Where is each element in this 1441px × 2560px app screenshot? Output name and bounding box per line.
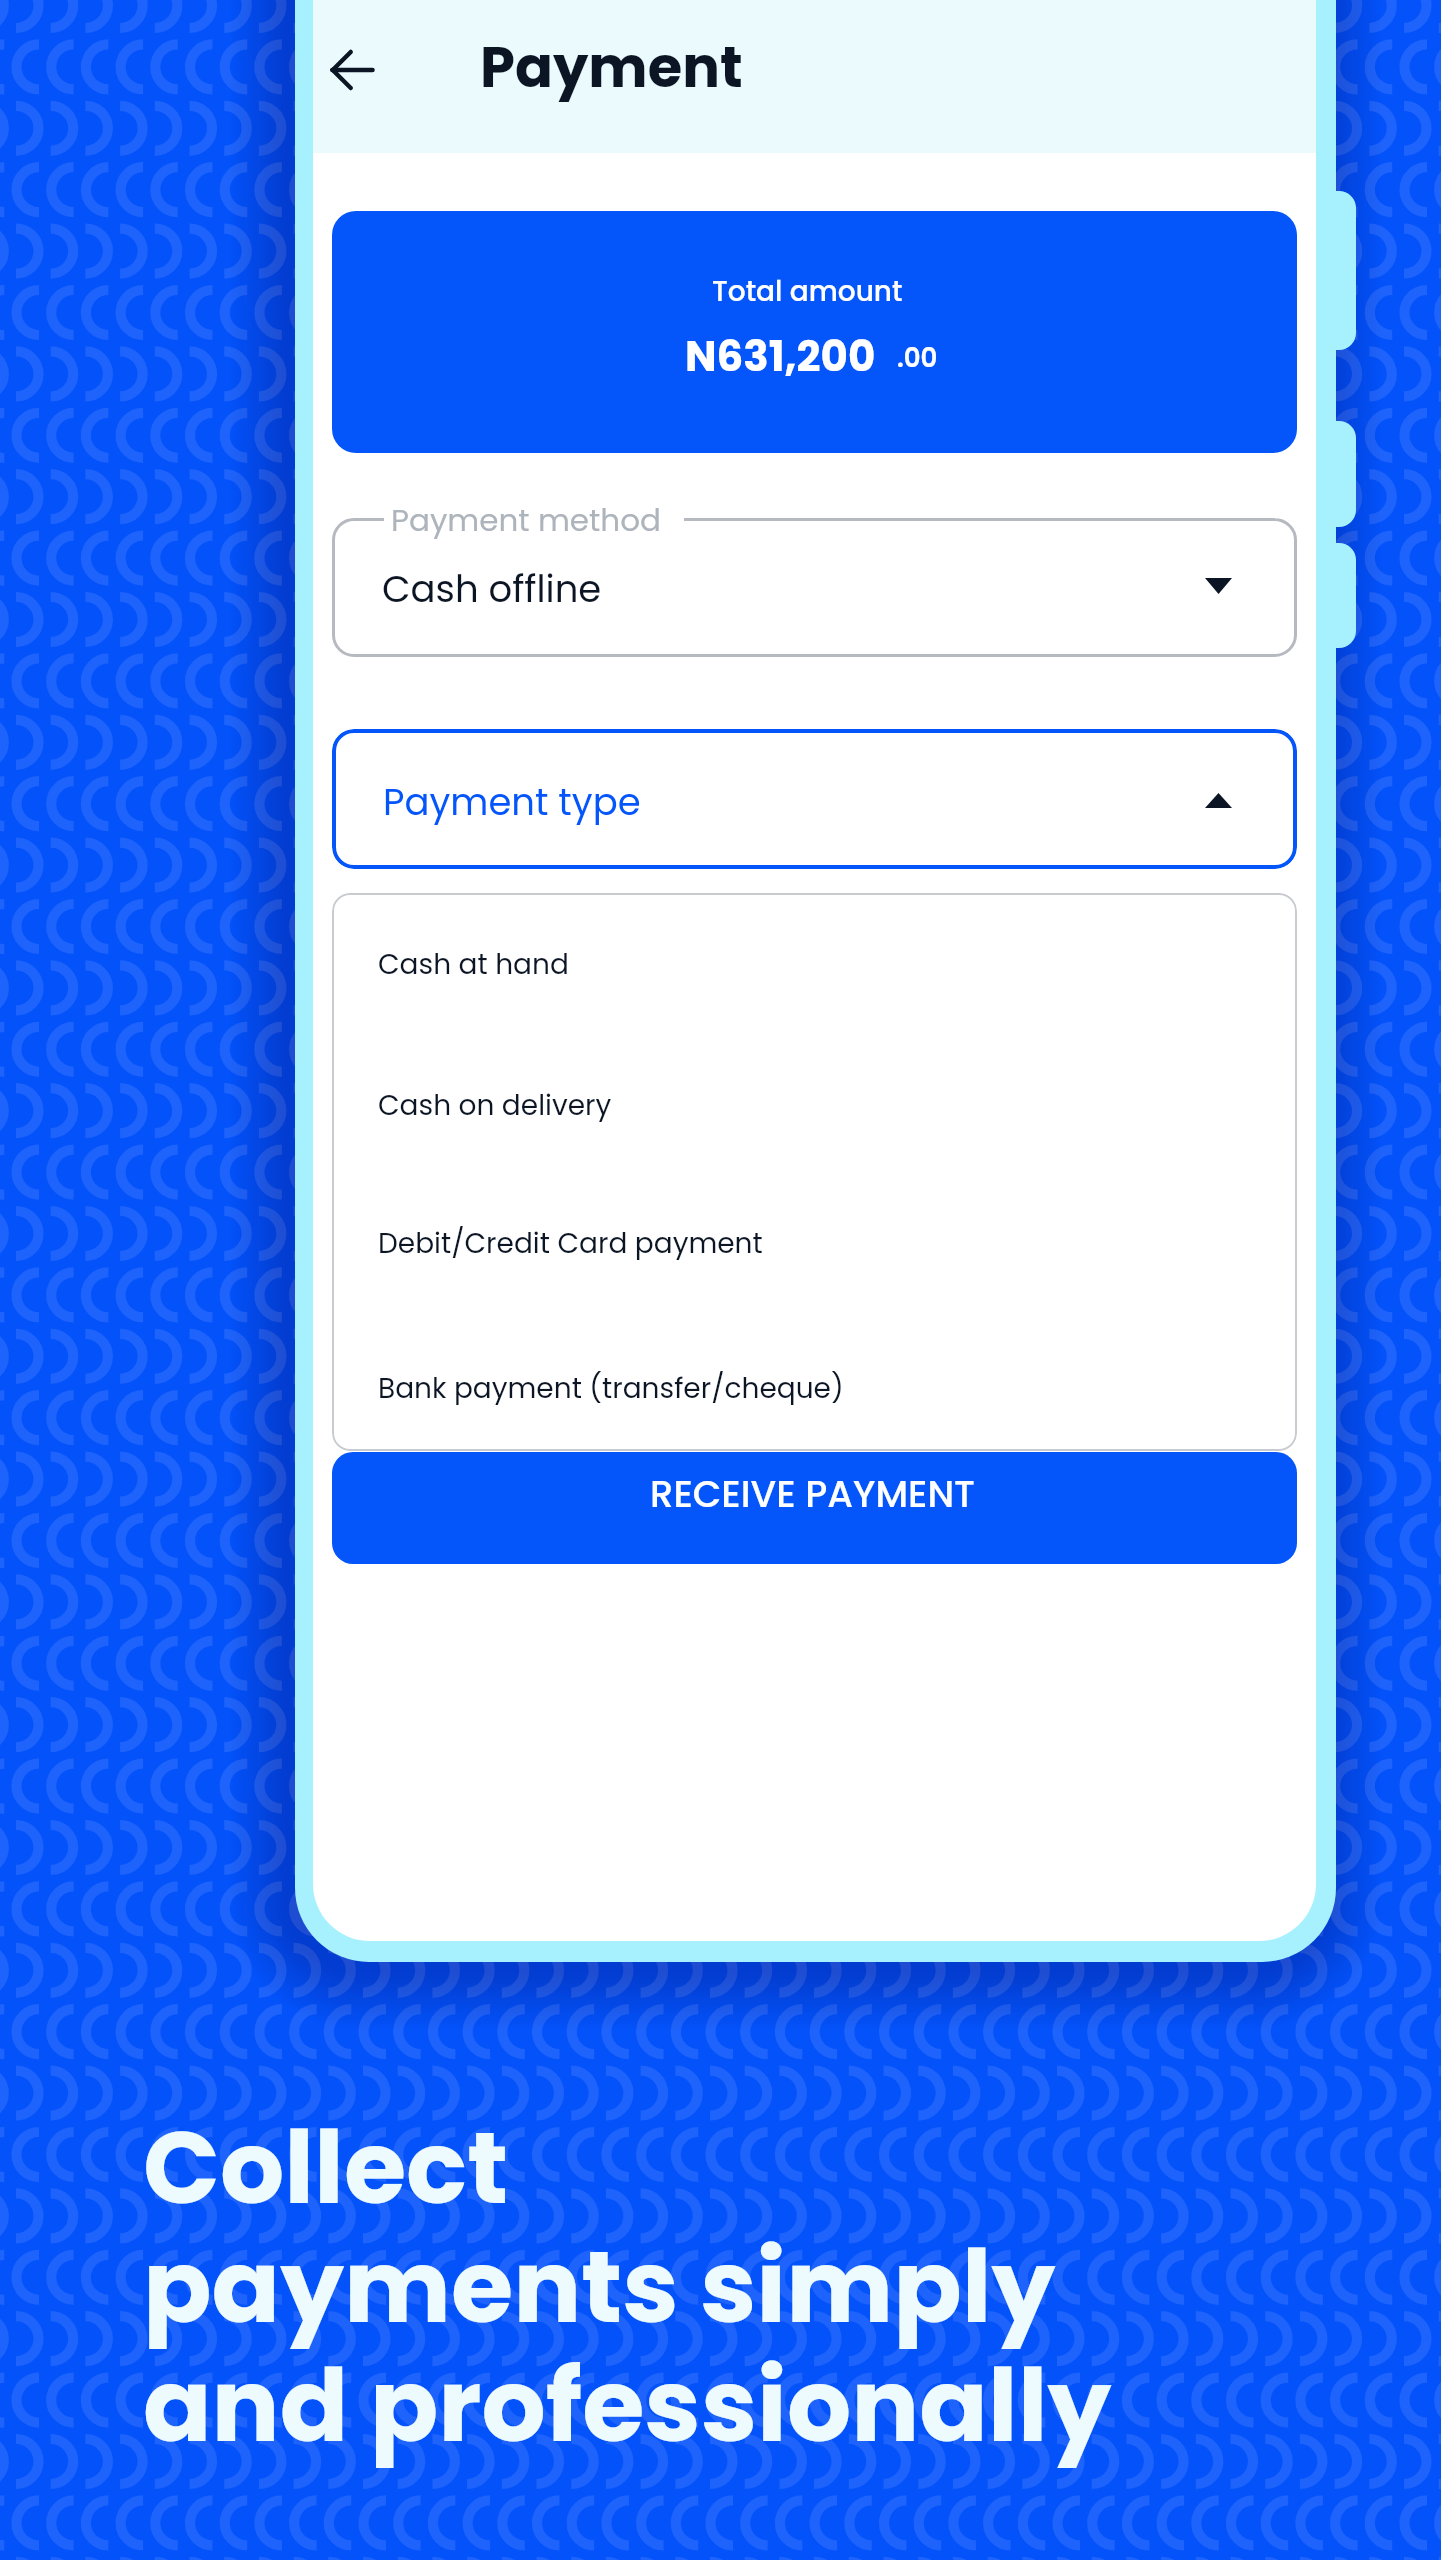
- button[interactable]: Debit/Credit Card payment: [332, 1193, 1297, 1293]
- staticText: Cash offline: [382, 563, 602, 615]
- staticText: Payment type: [383, 776, 641, 828]
- button[interactable]: Bank payment (transfer/cheque): [332, 1338, 1297, 1438]
- button[interactable]: RECEIVE PAYMENT: [332, 1452, 1297, 1564]
- button[interactable]: Cash at hand: [332, 914, 1297, 1014]
- button[interactable]: Cash on delivery: [332, 1055, 1297, 1155]
- button[interactable]: Payment method: [332, 502, 1297, 657]
- staticText: Total amount: [712, 272, 903, 311]
- button[interactable]: Back: [313, 14, 408, 126]
- staticText: Bank payment (transfer/cheque): [378, 1369, 844, 1408]
- button[interactable]: Total amount: [332, 211, 1297, 453]
- staticText: N631,200: [685, 327, 876, 386]
- staticText: Payment method: [391, 498, 661, 541]
- staticText: Payment: [480, 28, 743, 106]
- staticText: .00: [897, 340, 938, 376]
- staticText: RECEIVE PAYMENT: [650, 1468, 975, 1520]
- button[interactable]: Payment type: [332, 729, 1297, 869]
- staticText: Collect payments simply and professional…: [143, 2097, 1112, 2477]
- staticText: Debit/Credit Card payment: [378, 1224, 763, 1263]
- staticText: Cash on delivery: [378, 1086, 612, 1125]
- staticText: Cash at hand: [378, 945, 569, 984]
